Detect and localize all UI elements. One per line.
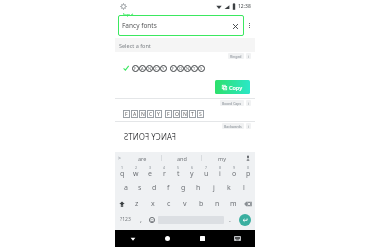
button[interactable]: Emoji	[146, 211, 158, 228]
button[interactable]: m	[225, 196, 241, 211]
staticText: i	[248, 101, 249, 106]
button[interactable]: Home	[150, 230, 185, 247]
staticText: A	[133, 111, 137, 118]
button[interactable]: Info	[246, 53, 251, 59]
button[interactable]: h	[191, 180, 206, 196]
button[interactable]: 4	[157, 164, 171, 180]
staticText: z	[135, 199, 139, 209]
staticText: A	[141, 66, 144, 71]
button[interactable]: g	[176, 180, 191, 196]
button[interactable]: 6	[185, 164, 199, 180]
staticText: .	[229, 215, 231, 225]
button[interactable]: 5	[171, 164, 185, 180]
staticText: Ringed	[230, 54, 242, 59]
button[interactable]: f	[161, 180, 176, 196]
staticText: Select a font	[119, 42, 151, 49]
button[interactable]: F	[115, 60, 255, 76]
button[interactable]: Recents	[185, 230, 220, 247]
staticText: i	[219, 169, 221, 179]
staticText: y	[190, 169, 194, 179]
staticText: 0	[247, 165, 250, 170]
button[interactable]: FANCY FONTS	[123, 130, 255, 142]
button[interactable]: More options	[244, 15, 254, 36]
button[interactable]: Copy	[215, 80, 250, 94]
staticText: i	[248, 124, 249, 129]
button[interactable]: Backspace	[241, 196, 255, 211]
button[interactable]: Voice input	[241, 152, 255, 164]
staticText: are	[138, 155, 147, 162]
staticText: 3	[149, 165, 152, 170]
staticText: S	[199, 111, 202, 118]
staticText: a	[124, 183, 128, 193]
button[interactable]: ?123	[115, 211, 135, 228]
button[interactable]: Info	[246, 100, 251, 106]
button[interactable]: 3	[143, 164, 157, 180]
button[interactable]: z	[129, 196, 145, 211]
staticText: 2	[135, 165, 138, 170]
button[interactable]: b	[193, 196, 209, 211]
button[interactable]: l	[236, 180, 251, 196]
button[interactable]: Info	[246, 123, 251, 129]
button[interactable]: are	[123, 152, 161, 164]
button[interactable]: 7	[199, 164, 213, 180]
button[interactable]: Fancy fonts	[118, 15, 244, 36]
staticText: o	[232, 169, 237, 179]
staticText: T	[193, 66, 196, 71]
staticText: i	[248, 54, 249, 59]
staticText: ?123	[120, 216, 131, 223]
button[interactable]: j	[206, 180, 221, 196]
staticText: e	[148, 169, 152, 179]
button[interactable]: Shift	[115, 196, 129, 211]
button[interactable]: Enter	[239, 214, 251, 226]
button[interactable]: ,	[135, 211, 146, 228]
button[interactable]: 9	[227, 164, 241, 180]
staticText: q	[120, 169, 125, 179]
button[interactable]: 1	[115, 164, 129, 180]
staticText: FANCY FONTS	[123, 131, 176, 142]
staticText: g	[181, 183, 186, 193]
button[interactable]: d	[147, 180, 161, 196]
staticText: c	[167, 199, 171, 209]
staticText: Backwards	[224, 124, 242, 129]
button[interactable]: k	[221, 180, 236, 196]
staticText: s	[138, 183, 142, 193]
staticText: and	[177, 155, 187, 162]
button[interactable]: x	[145, 196, 161, 211]
button[interactable]: .	[224, 211, 235, 228]
staticText: Fancy fonts	[122, 21, 230, 30]
button[interactable]: a	[119, 180, 133, 196]
staticText: 9	[233, 165, 236, 170]
staticText: ,	[140, 215, 142, 225]
staticText: h	[196, 183, 201, 193]
button[interactable]: n	[209, 196, 225, 211]
staticText: j	[213, 183, 215, 193]
button[interactable]: Back	[115, 230, 150, 247]
staticText: N	[141, 111, 145, 118]
button[interactable]: 8	[213, 164, 227, 180]
button[interactable]: Expand suggestions	[115, 152, 123, 164]
staticText: N	[183, 111, 187, 118]
staticText: my	[218, 155, 226, 162]
button[interactable]: 2	[129, 164, 143, 180]
staticText: m	[230, 199, 237, 209]
button[interactable]: my	[202, 152, 241, 164]
staticText: >	[118, 155, 121, 162]
button[interactable]: and	[162, 152, 201, 164]
staticText: Y	[157, 111, 160, 118]
button[interactable]: v	[177, 196, 193, 211]
staticText: p	[246, 169, 251, 179]
staticText: N	[148, 66, 152, 71]
staticText: f	[167, 183, 170, 193]
staticText: b	[199, 199, 204, 209]
staticText: 7	[205, 165, 208, 170]
button[interactable]: Hide keyboard	[220, 230, 255, 247]
button[interactable]: F	[123, 107, 255, 121]
button[interactable]: 0	[241, 164, 255, 180]
button[interactable]: Clear text	[230, 21, 240, 31]
button[interactable]: c	[161, 196, 177, 211]
staticText: 6	[191, 165, 194, 170]
staticText: 12:38	[238, 3, 251, 10]
staticText: T	[191, 111, 194, 118]
button[interactable]: s	[133, 180, 147, 196]
